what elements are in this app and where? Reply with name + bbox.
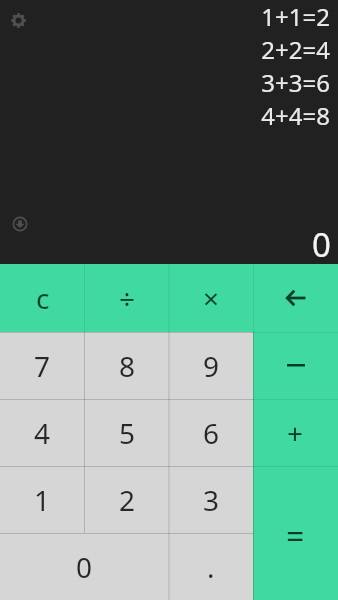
button[interactable]: 8 [85, 332, 169, 399]
staticText: 0 [312, 222, 331, 267]
staticText: 1 [34, 481, 51, 519]
button[interactable]: 7 [0, 332, 85, 399]
button[interactable]: 5 [85, 399, 169, 466]
staticText: 3 [203, 481, 220, 519]
staticText: c [36, 279, 50, 317]
staticText: 4 [34, 414, 51, 452]
staticText: + [287, 414, 304, 452]
button[interactable]: c [0, 264, 85, 332]
staticText: ÷ [119, 279, 136, 317]
staticText: = [286, 514, 305, 558]
button[interactable]: 1 [0, 466, 85, 533]
button[interactable]: 2 [85, 466, 169, 533]
button[interactable]: Minus [253, 332, 338, 399]
staticText: 2 [119, 481, 136, 519]
staticText: 0 [76, 548, 93, 586]
button[interactable]: = [253, 466, 338, 600]
button[interactable]: 9 [169, 332, 253, 399]
staticText: 5 [119, 414, 136, 452]
staticText: 9 [203, 347, 220, 385]
staticText: 7 [34, 347, 51, 385]
staticText: 6 [203, 414, 220, 452]
button[interactable]: Backspace [253, 264, 338, 332]
button[interactable]: + [253, 399, 338, 466]
button[interactable]: 6 [169, 399, 253, 466]
button[interactable]: 4 [0, 399, 85, 466]
button[interactable]: 0 [0, 533, 169, 600]
button[interactable]: ÷ [85, 264, 169, 332]
staticText: 1+1=2 2+2=4 3+3=6 4+4=8 [261, 0, 330, 132]
button[interactable]: Settings [7, 9, 30, 32]
button[interactable]: Show history [8, 212, 31, 235]
button[interactable]: 3 [169, 466, 253, 533]
staticText: × [203, 279, 220, 317]
button[interactable]: × [169, 264, 253, 332]
staticText: . [207, 548, 215, 586]
button[interactable]: . [169, 533, 253, 600]
staticText: 8 [119, 347, 136, 385]
